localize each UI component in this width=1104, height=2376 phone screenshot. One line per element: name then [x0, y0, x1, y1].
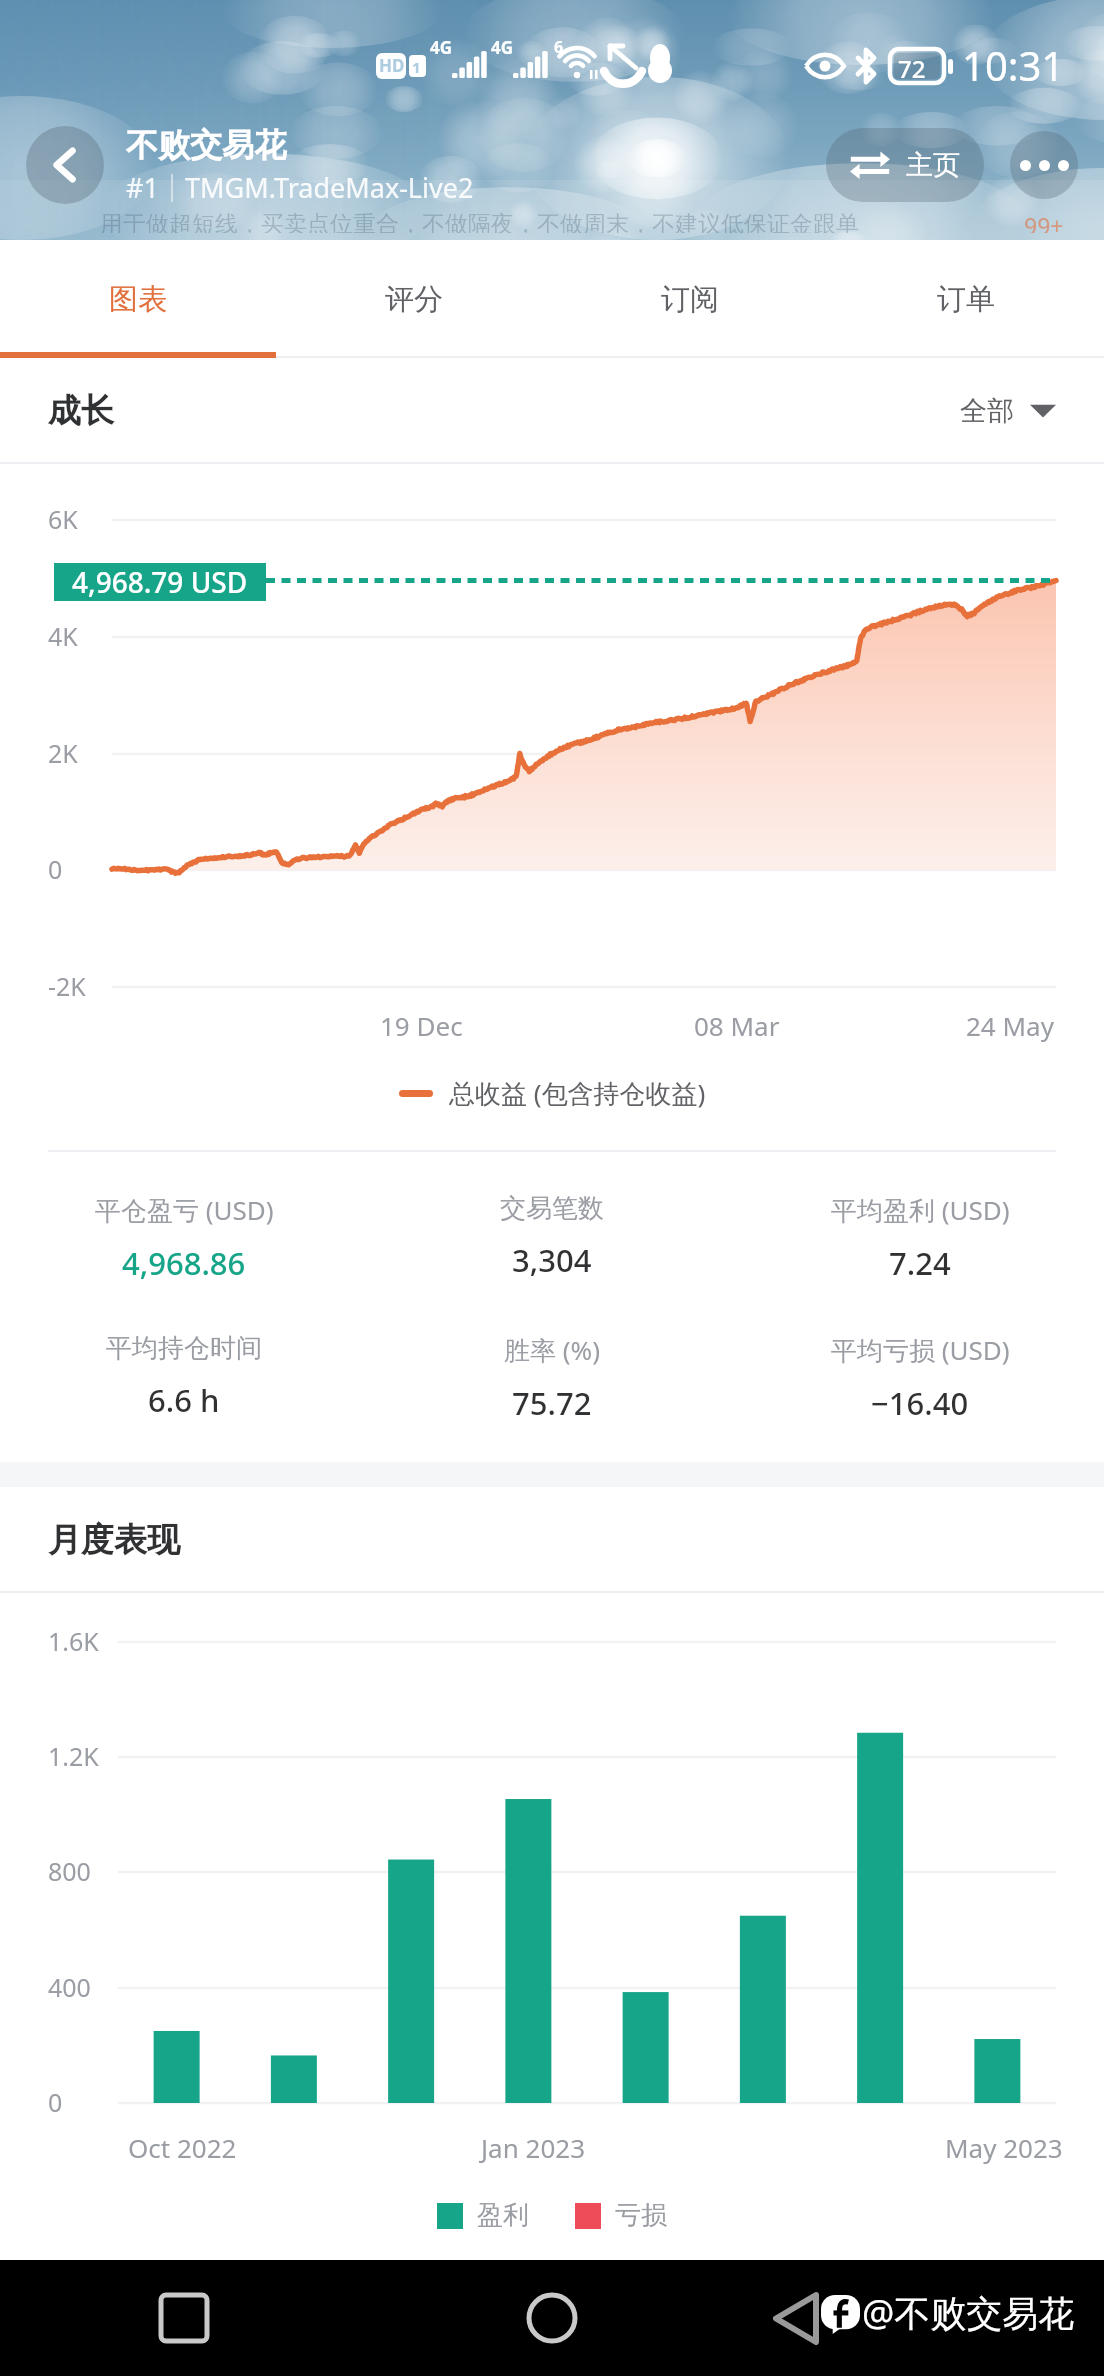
staticText: 总收益 (包含持仓收益): [449, 1075, 706, 1111]
staticText: 72: [898, 52, 926, 85]
button[interactable]: More options: [1010, 131, 1078, 199]
staticText: 亏损: [615, 2199, 667, 2232]
staticText: 全部: [960, 394, 1014, 428]
staticText: May 2023: [945, 2130, 1063, 2165]
staticText: -2K: [48, 969, 86, 1003]
staticText: 0: [48, 852, 63, 886]
staticText: 不败交易花: [126, 125, 286, 165]
staticText: 6.6 h: [148, 1379, 220, 1421]
staticText: 1.2K: [48, 1739, 99, 1773]
staticText: 6K: [48, 502, 78, 536]
staticText: #1: [126, 169, 159, 206]
button[interactable]: Back: [736, 2260, 1104, 2376]
staticText: 1.6K: [48, 1624, 99, 1658]
staticText: Oct 2022: [128, 2130, 237, 2165]
staticText: 3,304: [512, 1239, 592, 1281]
button[interactable]: 主页: [826, 128, 984, 202]
staticText: 1: [412, 57, 421, 77]
staticText: 19 Dec: [380, 1008, 463, 1043]
staticText: 0: [48, 2085, 63, 2119]
staticText: 08 Mar: [694, 1008, 780, 1043]
staticText: TMGM.TradeMax-Live2: [185, 169, 474, 206]
staticText: 75.72: [512, 1382, 592, 1424]
staticText: 10:31: [962, 38, 1065, 92]
staticText: 盈利: [477, 2199, 529, 2232]
button[interactable]: 订阅: [552, 240, 828, 358]
staticText: 胜率 (%): [504, 1332, 600, 1368]
staticText: 平仓盈亏 (USD): [95, 1192, 274, 1228]
staticText: 4G: [491, 36, 514, 59]
button[interactable]: 订单: [828, 240, 1104, 358]
staticText: 月度表现: [48, 1519, 180, 1561]
button[interactable]: Recents: [0, 2260, 368, 2376]
staticText: 成长: [48, 390, 114, 432]
staticText: 400: [48, 1970, 91, 2004]
staticText: 800: [48, 1854, 91, 1888]
staticText: 24 May: [966, 1008, 1054, 1043]
staticText: 4,968.79 USD: [72, 563, 248, 601]
staticText: 评分: [385, 281, 443, 318]
button[interactable]: 图表: [0, 240, 276, 358]
staticText: 平均持仓时间: [106, 1332, 262, 1365]
staticText: 7.24: [889, 1242, 951, 1284]
staticText: 用于做超短线，买卖点位重合，不做隔夜，不做周末，不建议低保证金跟单: [100, 210, 859, 233]
staticText: HD: [379, 54, 405, 77]
staticText: 4K: [48, 619, 78, 653]
staticText: 4G: [430, 36, 453, 59]
button[interactable]: 全部: [960, 382, 1056, 440]
staticText: 交易笔数: [500, 1192, 604, 1225]
staticText: 平均亏损 (USD): [831, 1332, 1010, 1368]
staticText: Jan 2023: [481, 2130, 586, 2165]
button[interactable]: 评分: [276, 240, 552, 358]
staticText: 平均盈利 (USD): [831, 1192, 1010, 1228]
button[interactable]: Home: [368, 2260, 736, 2376]
staticText: −16.40: [871, 1382, 969, 1424]
button[interactable]: Back: [26, 126, 104, 204]
staticText: @不败交易花: [862, 2288, 1075, 2337]
staticText: 99+: [1024, 210, 1064, 233]
staticText: 主页: [906, 148, 960, 182]
staticText: 图表: [109, 281, 167, 318]
staticText: 4,968.86: [122, 1242, 246, 1284]
staticText: 6: [554, 36, 564, 58]
staticText: 订阅: [661, 281, 719, 318]
staticText: 订单: [937, 281, 995, 318]
staticText: 2K: [48, 736, 78, 770]
